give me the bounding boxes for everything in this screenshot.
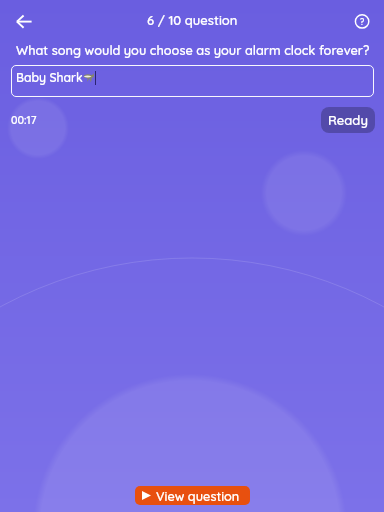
staticText: What song would you choose as your alarm… bbox=[16, 42, 370, 58]
staticText: Ready bbox=[328, 112, 368, 128]
button[interactable]: Baby Shark bbox=[11, 65, 374, 97]
button[interactable]: Help bbox=[344, 4, 380, 40]
staticText: Baby Shark bbox=[16, 70, 83, 85]
staticText: ? bbox=[360, 16, 365, 27]
staticText: View question bbox=[156, 488, 240, 504]
staticText: 00:17 bbox=[11, 113, 37, 127]
staticText: 6 / 10 question bbox=[147, 12, 238, 28]
button[interactable]: Ready bbox=[321, 107, 375, 133]
button[interactable]: View question bbox=[135, 486, 250, 505]
button[interactable]: Back bbox=[5, 5, 43, 43]
